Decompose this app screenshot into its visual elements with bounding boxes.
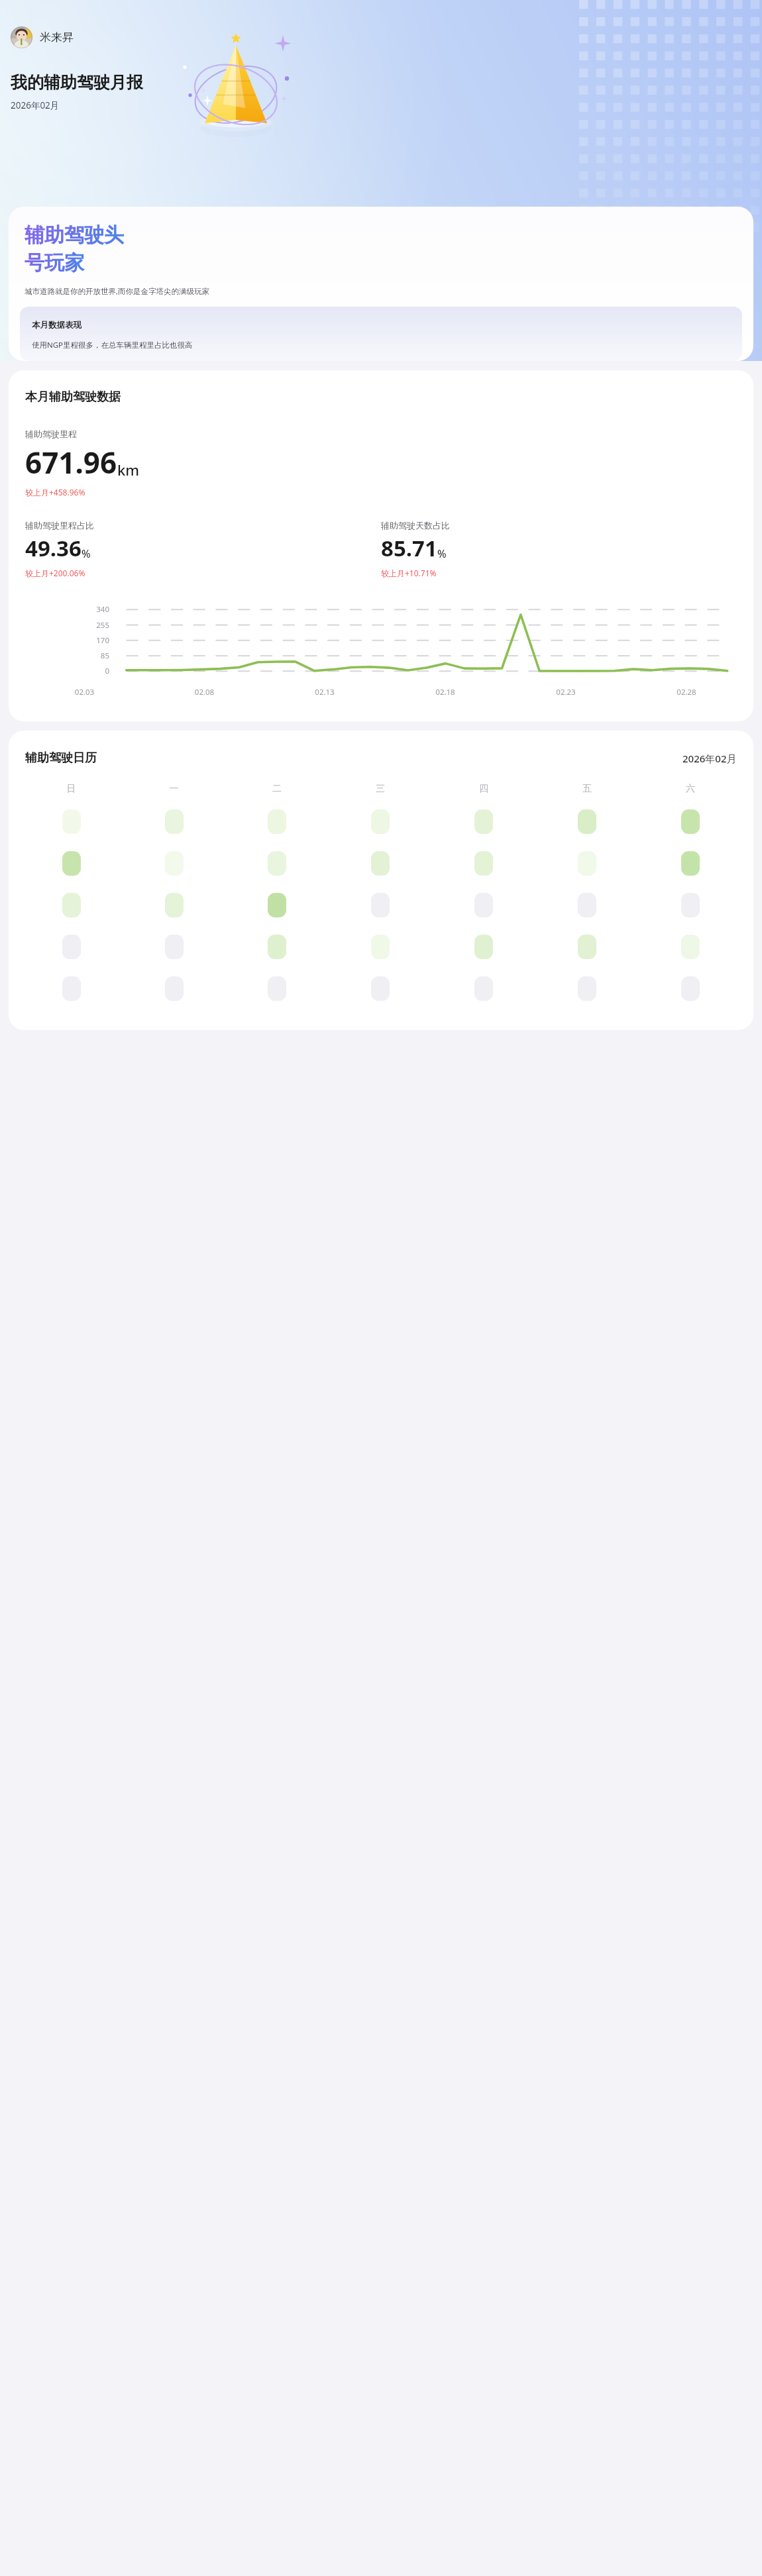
staticText: 671.96	[25, 442, 117, 482]
button[interactable]	[474, 851, 493, 876]
button[interactable]	[578, 976, 596, 1001]
staticText: 较上月+200.06%	[25, 568, 85, 578]
staticText: %	[82, 546, 91, 561]
button[interactable]	[268, 976, 286, 1001]
staticText: 六	[639, 783, 742, 795]
staticText: 二	[225, 783, 329, 795]
button[interactable]: 本月辅助驾驶数据	[9, 370, 753, 721]
staticText: 我的辅助驾驶月报	[11, 72, 143, 93]
button[interactable]	[578, 851, 596, 876]
button[interactable]	[268, 893, 286, 917]
button[interactable]	[268, 935, 286, 959]
staticText: 2026年02月	[682, 752, 737, 765]
staticText: 一	[123, 783, 225, 795]
staticText: 02.03	[25, 687, 144, 697]
button[interactable]	[268, 851, 286, 876]
staticText: 辅助驾驶天数占比	[381, 520, 450, 531]
button[interactable]	[474, 976, 493, 1001]
other: Profile avatar	[11, 26, 32, 48]
staticText: 较上月+458.96%	[25, 487, 85, 497]
button[interactable]	[474, 893, 493, 917]
button[interactable]	[681, 976, 700, 1001]
staticText: %	[437, 546, 447, 561]
staticText: 本月辅助驾驶数据	[25, 389, 121, 405]
staticText: 辅助驾驶里程	[25, 429, 77, 439]
staticText: 02.08	[144, 687, 264, 697]
staticText: 辅助驾驶日历	[25, 750, 97, 766]
staticText: 02.13	[264, 687, 385, 697]
button[interactable]	[578, 935, 596, 959]
button[interactable]	[62, 851, 81, 876]
button[interactable]	[371, 976, 390, 1001]
staticText: 较上月+10.71%	[381, 568, 437, 578]
button[interactable]	[62, 809, 81, 834]
button[interactable]	[578, 893, 596, 917]
button[interactable]: 辅助驾驶日历	[9, 731, 753, 1030]
button[interactable]	[165, 809, 184, 834]
staticText: 本月数据表现	[32, 320, 82, 331]
button[interactable]: 辅助驾驶天数占比	[381, 520, 753, 578]
button[interactable]	[371, 809, 390, 834]
staticText: 号玩家	[25, 250, 84, 276]
staticText: 340	[9, 604, 109, 615]
staticText: 49.36	[25, 533, 82, 563]
button[interactable]: 辅助驾驶头	[9, 207, 753, 361]
button[interactable]	[681, 809, 700, 834]
button[interactable]: 辅助驾驶里程占比	[25, 520, 381, 578]
staticText: 辅助驾驶头	[25, 223, 124, 248]
button[interactable]	[474, 809, 493, 834]
button[interactable]	[62, 893, 81, 917]
button[interactable]	[165, 851, 184, 876]
staticText: 2026年02月	[11, 99, 60, 111]
button[interactable]: Profile avatar	[11, 26, 74, 48]
button[interactable]: 本月数据表现	[20, 307, 742, 361]
button[interactable]	[681, 893, 700, 917]
staticText: 02.28	[626, 687, 747, 697]
staticText: 使用NGP里程很多，在总车辆里程里占比也很高	[32, 340, 193, 350]
staticText: 米来昇	[40, 30, 74, 44]
staticText: 三	[329, 783, 432, 795]
button[interactable]	[371, 893, 390, 917]
button[interactable]	[474, 935, 493, 959]
staticText: km	[117, 460, 140, 480]
button[interactable]	[681, 935, 700, 959]
button[interactable]	[165, 976, 184, 1001]
staticText: 日	[20, 783, 123, 795]
button[interactable]	[371, 851, 390, 876]
button[interactable]	[165, 893, 184, 917]
staticText: 85	[9, 650, 109, 661]
button[interactable]	[268, 809, 286, 834]
button[interactable]	[578, 809, 596, 834]
staticText: 02.18	[385, 687, 506, 697]
button[interactable]	[165, 935, 184, 959]
staticText: 0	[9, 666, 109, 676]
staticText: 02.23	[506, 687, 626, 697]
staticText: 四	[432, 783, 535, 795]
staticText: 五	[535, 783, 639, 795]
staticText: 辅助驾驶里程占比	[25, 520, 94, 531]
button[interactable]	[371, 935, 390, 959]
staticText: 170	[9, 635, 109, 646]
button[interactable]	[681, 851, 700, 876]
staticText: 255	[9, 620, 109, 631]
button[interactable]	[62, 935, 81, 959]
button[interactable]	[62, 976, 81, 1001]
staticText: 85.71	[381, 533, 437, 563]
staticText: 城市道路就是你的开放世界,而你是金字塔尖的满级玩家	[25, 286, 210, 297]
